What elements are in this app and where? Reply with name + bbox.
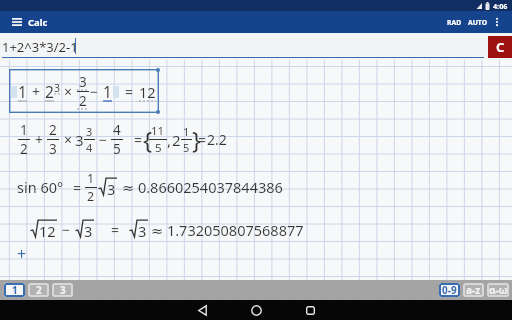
button[interactable]: 2 <box>28 283 49 297</box>
staticText: = <box>134 130 143 149</box>
staticText: − <box>62 220 71 239</box>
staticText: 2 <box>79 92 87 110</box>
button[interactable]: + <box>13 243 31 261</box>
staticText: 4 <box>86 140 93 155</box>
staticText: 2 <box>49 121 57 139</box>
staticText: 3 <box>49 140 57 158</box>
button[interactable] <box>288 300 332 320</box>
staticText: = <box>198 130 207 149</box>
staticText: 3 <box>60 283 66 297</box>
staticText: 1+2^3*3/2-1 <box>2 38 78 56</box>
button[interactable]: 0-9 <box>439 283 460 297</box>
staticText: 3 <box>54 81 61 95</box>
staticText: + <box>17 243 27 261</box>
staticText: × <box>64 130 73 149</box>
staticText: = <box>111 220 120 239</box>
staticText: ≈ 1.732050807568877 <box>151 220 304 240</box>
staticText: + <box>35 130 44 149</box>
button[interactable] <box>489 11 504 33</box>
staticText: 2 <box>36 283 42 297</box>
button[interactable]: C <box>488 36 512 58</box>
staticText: 5 <box>155 140 162 156</box>
button[interactable]: 1 <box>11 68 156 114</box>
button[interactable]: 3 <box>52 283 73 297</box>
staticText: ≈ 0.8660254037844386 <box>122 177 283 197</box>
staticText: C <box>496 38 505 56</box>
staticText: 5 <box>183 140 190 155</box>
staticText: 4 <box>113 121 121 139</box>
staticText: , <box>167 130 172 150</box>
staticText: 1 <box>183 124 190 139</box>
button[interactable]: 1 <box>18 117 227 161</box>
staticText: 2.2 <box>207 130 227 149</box>
staticText: sin 60° <box>17 177 64 197</box>
staticText: AUTO <box>468 18 488 27</box>
staticText: 12 <box>39 221 56 241</box>
button[interactable]: a-z <box>463 283 484 297</box>
staticText: 5 <box>113 140 121 158</box>
button[interactable]: α-ω <box>487 283 509 297</box>
staticText: 3 <box>138 221 147 241</box>
button[interactable]: RAD <box>447 11 462 33</box>
staticText: α-ω <box>489 283 508 297</box>
staticText: 2 <box>20 140 28 158</box>
button[interactable]: 12 <box>29 214 304 244</box>
staticText: 0-9 <box>442 283 457 297</box>
staticText: 3 <box>75 130 84 150</box>
button[interactable] <box>234 300 278 320</box>
staticText: 1 <box>103 81 112 102</box>
staticText: − <box>90 82 99 101</box>
staticText: 3 <box>84 221 93 241</box>
staticText: 1 <box>20 121 28 139</box>
button[interactable] <box>180 300 224 320</box>
staticText: 4:06 <box>493 1 508 11</box>
staticText: a-z <box>466 283 481 297</box>
staticText: + <box>32 82 41 101</box>
button[interactable]: sin 60° <box>17 170 283 204</box>
staticText: 2 <box>87 188 95 204</box>
staticText: } <box>192 123 198 156</box>
staticText: 1 <box>12 283 18 297</box>
staticText: 12 <box>139 82 156 102</box>
staticText: 2 <box>172 130 181 150</box>
staticText: 1 <box>18 81 27 102</box>
staticText: 1 <box>87 170 95 187</box>
staticText: Calc <box>28 16 48 29</box>
staticText: × <box>64 82 73 101</box>
staticText: 3 <box>86 124 93 139</box>
staticText: 3 <box>107 179 116 199</box>
staticText: = <box>125 82 134 101</box>
button[interactable]: AUTO <box>468 11 488 33</box>
staticText: 2 <box>45 81 54 102</box>
staticText: RAD <box>447 18 462 27</box>
staticText: − <box>99 130 108 149</box>
staticText: 11 <box>151 123 165 139</box>
staticText: { <box>143 123 149 156</box>
staticText: = <box>73 178 82 197</box>
button[interactable] <box>12 11 22 33</box>
staticText: 3 <box>79 73 87 91</box>
button[interactable]: 1 <box>4 283 25 297</box>
